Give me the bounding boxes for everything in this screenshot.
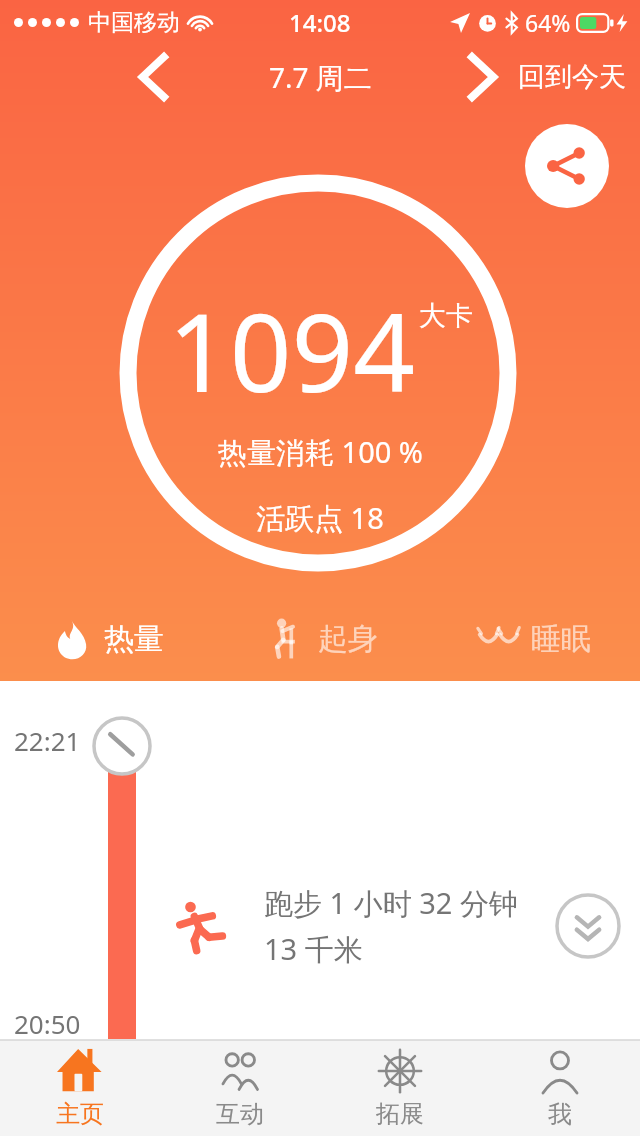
staticText: 拓展 [376,1099,424,1129]
staticText: 主页 [56,1099,104,1129]
staticText: 20:50 [14,1006,81,1041]
staticText: 大卡 [419,299,473,333]
button[interactable]: 热量 [0,600,214,678]
other: 展开 [554,892,622,960]
staticText: 睡眠 [531,620,591,658]
staticText: 起身 [318,620,378,658]
staticText: 1094 [168,277,416,424]
button[interactable]: 起身 [214,600,427,678]
button[interactable]: 下一天 [456,50,510,104]
button[interactable]: 7.7 周二 [269,58,372,96]
staticText: 13 千米 [264,929,363,969]
staticText: 64% [525,7,571,38]
staticText: 跑步 1 小时 32 分钟 [264,883,518,923]
button[interactable]: 睡眠 [427,600,640,678]
staticText: 活跃点 18 [256,498,384,538]
staticText: 回到今天 [518,60,626,94]
button[interactable]: 上一天 [126,50,180,104]
staticText: 热量消耗 100 % [218,432,423,472]
staticText: 中国移动 [88,8,180,37]
button[interactable]: 互动 [160,1041,320,1136]
staticText: 互动 [216,1099,264,1129]
button[interactable]: 跑步 1 小时 32 分钟 [0,871,640,981]
staticText: 热量 [104,620,164,658]
staticText: 22:21 [14,723,81,758]
button[interactable]: 分享 [525,124,609,208]
button[interactable]: 主页 [0,1041,160,1136]
button[interactable]: 拓展 [320,1041,480,1136]
button[interactable]: 我 [480,1041,640,1136]
button[interactable]: 回到今天 [518,60,626,94]
staticText: 我 [548,1099,572,1129]
staticText: 14:08 [289,6,351,39]
